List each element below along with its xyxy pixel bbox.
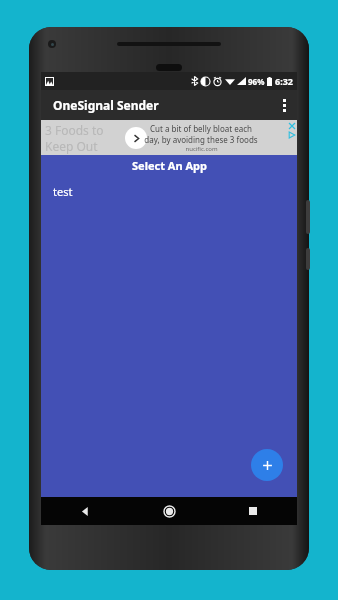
button[interactable]: Recent apps [239,497,267,525]
staticText: 3 Foods to [45,122,104,138]
button[interactable]: More options [271,90,297,120]
staticText: Keep Out [45,138,98,154]
staticText: test [53,184,73,199]
button[interactable]: Back [71,497,99,525]
button[interactable]: Home [155,497,183,525]
button[interactable]: Close ad [288,122,296,130]
button[interactable]: Add [251,449,283,481]
staticText: OneSignal Sender [53,97,159,113]
staticText: nucific.com [185,145,218,153]
staticText: 96% [248,76,265,87]
staticText: Cut a bit of belly bloat each [150,123,252,134]
staticText: 6:32 [275,75,293,87]
staticText: day, by avoiding these 3 foods [144,134,258,145]
button[interactable]: 3 Foods to [41,120,297,155]
button[interactable]: test [41,176,297,206]
staticText: Select An App [132,158,207,173]
